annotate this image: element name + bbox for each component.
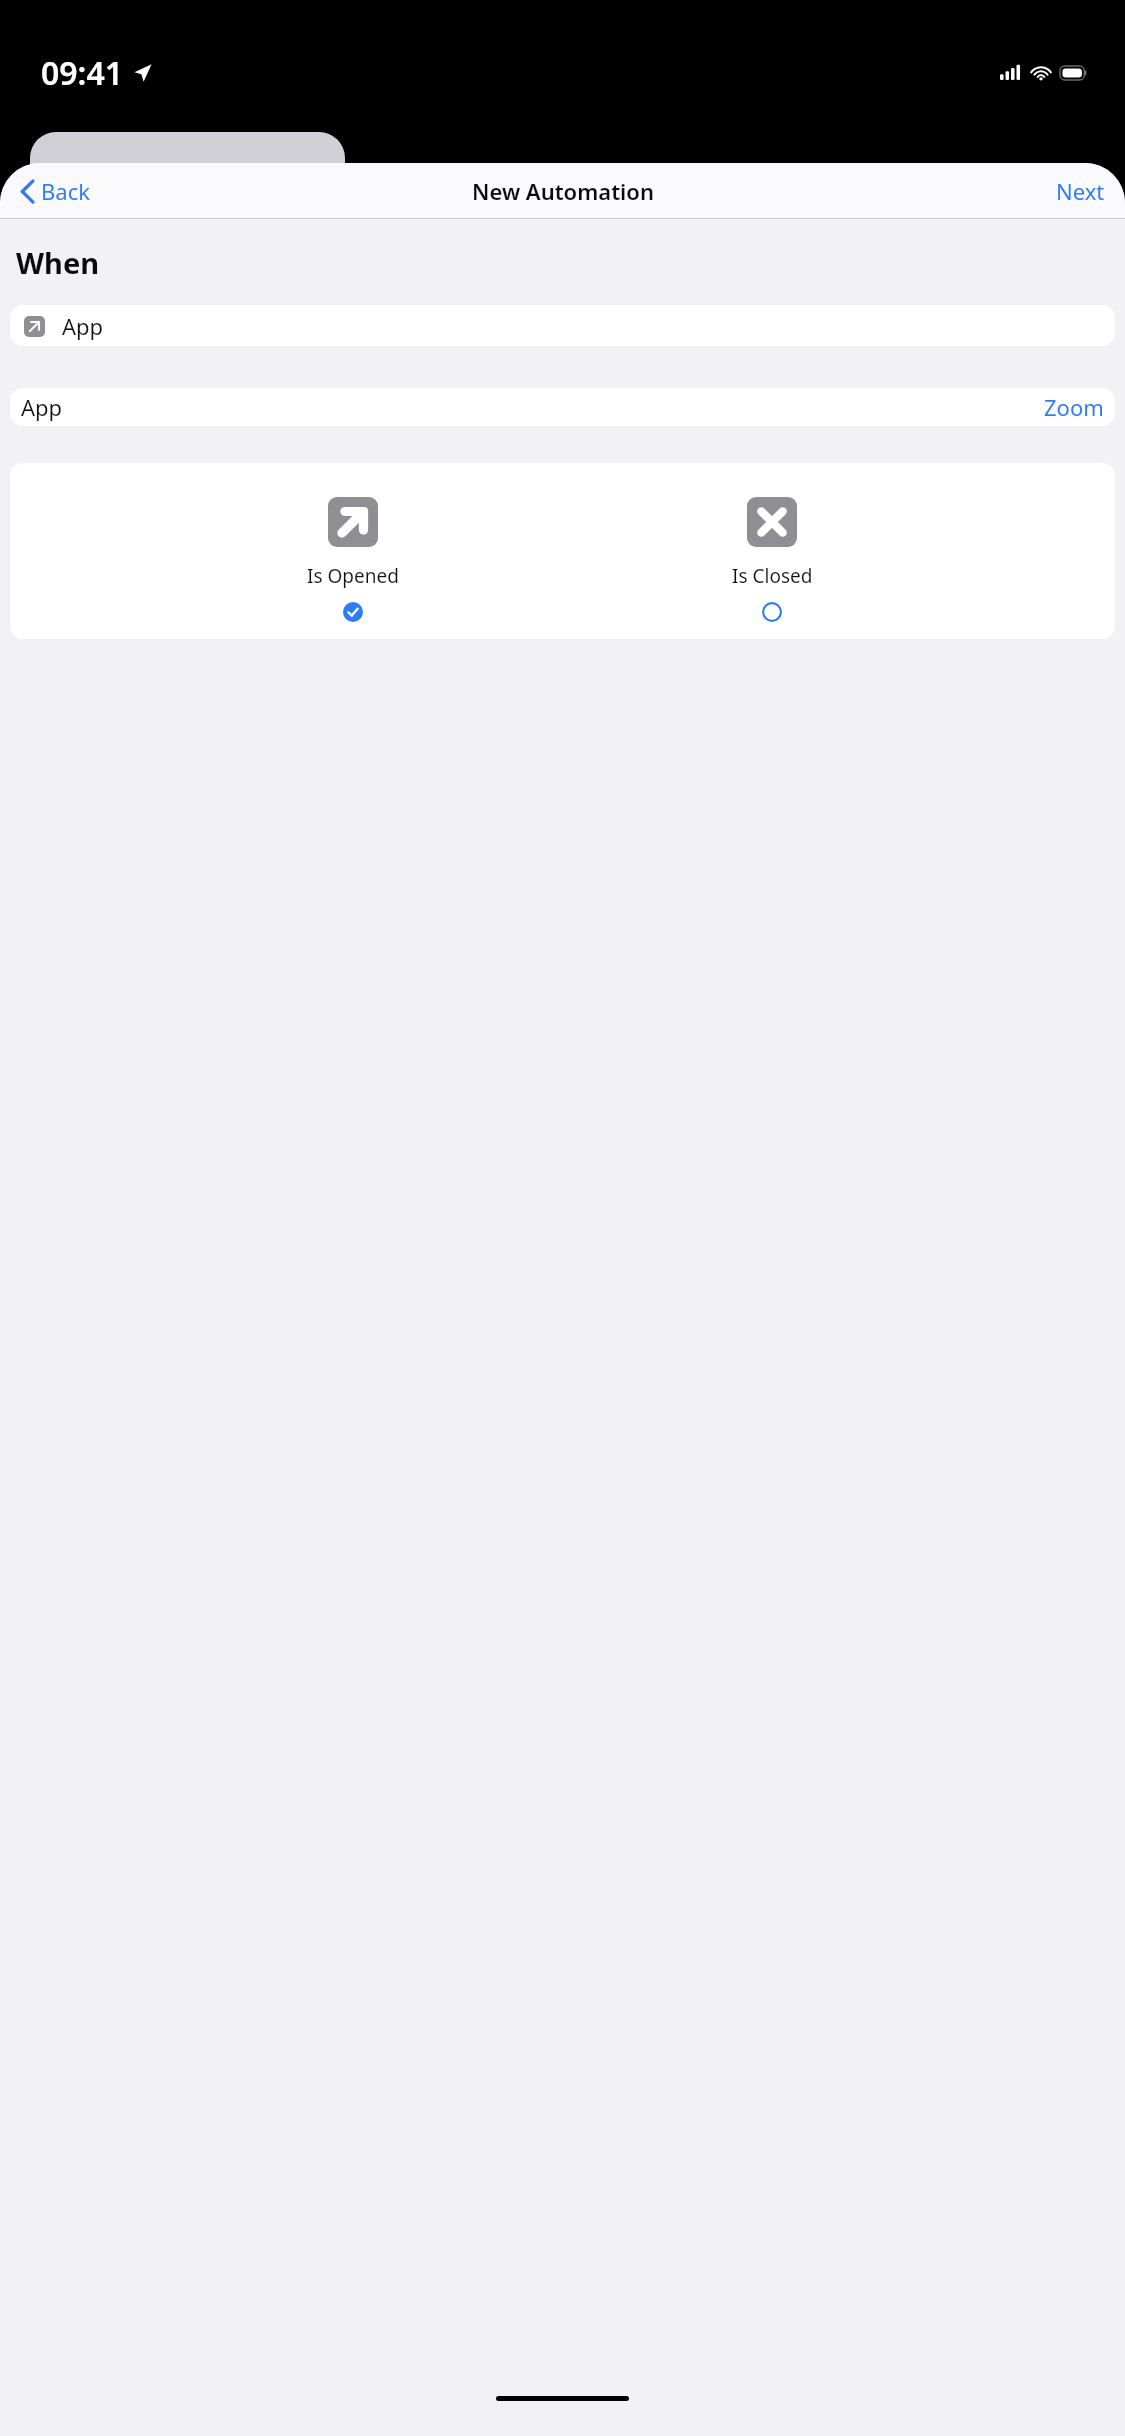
button[interactable]: Back [0,168,104,214]
button[interactable]: Next [1036,168,1125,214]
staticText: 09:41 [41,51,124,95]
button[interactable]: Is Closed [697,495,847,624]
staticText: New Automation [472,176,654,206]
staticText: App [62,311,104,341]
button[interactable]: Is Opened [278,495,428,624]
staticText: Is Closed [732,563,813,589]
staticText: App [21,392,63,422]
button[interactable]: App [10,305,1115,346]
staticText: When [16,243,100,282]
staticText: Is Opened [307,563,399,589]
button[interactable]: App [10,388,1115,426]
staticText: Back [41,176,90,206]
staticText: Next [1056,176,1105,206]
staticText: Zoom [1044,392,1104,422]
